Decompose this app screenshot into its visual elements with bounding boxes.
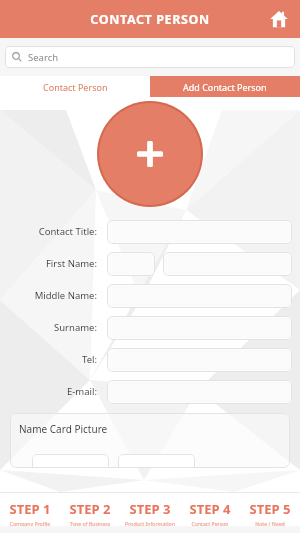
button[interactable]: STEP 2 (60, 492, 120, 533)
staticText: Tel: (0, 353, 97, 366)
staticText: Search (28, 51, 59, 64)
button[interactable]: Text field (107, 220, 292, 244)
staticText: Company Profile (0, 520, 60, 527)
button[interactable]: Add contact person (99, 103, 201, 205)
staticText: First Name: (0, 257, 97, 270)
button[interactable]: Text field (107, 348, 292, 372)
button[interactable]: Picture slot 2 (118, 454, 195, 468)
staticText: CONTACT PERSON (0, 11, 300, 28)
staticText: E-mail: (0, 385, 97, 398)
staticText: Note / Need (240, 520, 300, 527)
staticText: STEP 3 (120, 500, 180, 518)
staticText: Type of Business (60, 520, 120, 527)
button[interactable]: Home (264, 4, 294, 34)
button[interactable]: Add Contact Person (150, 76, 300, 97)
button[interactable]: Text field (107, 380, 292, 404)
staticText: STEP 5 (240, 500, 300, 518)
staticText: Contact Person (43, 81, 108, 93)
button[interactable]: Text field (107, 252, 155, 276)
staticText: STEP 4 (180, 500, 240, 518)
staticText: STEP 1 (0, 500, 60, 518)
staticText: Add Contact Person (183, 81, 267, 93)
button[interactable]: STEP 4 (180, 492, 240, 533)
staticText: Contact Person (180, 520, 240, 527)
button[interactable]: Name Card Picture (10, 413, 290, 468)
button[interactable]: Picture slot 1 (32, 454, 109, 468)
button[interactable]: Contact Person (0, 76, 150, 97)
staticText: Contact Title: (0, 225, 97, 238)
button[interactable]: Text field (163, 252, 292, 276)
button[interactable]: STEP 5 (240, 492, 300, 533)
staticText: STEP 2 (60, 500, 120, 518)
button[interactable]: Text field (107, 316, 292, 340)
staticText: Name Card Picture (19, 422, 108, 436)
button[interactable]: STEP 3 (120, 492, 180, 533)
button[interactable]: STEP 1 (0, 492, 60, 533)
button[interactable]: Text field (107, 284, 292, 308)
button[interactable]: Search (5, 46, 295, 68)
staticText: Product Information (120, 520, 180, 527)
staticText: Surname: (0, 321, 97, 334)
staticText: Middle Name: (0, 289, 97, 302)
